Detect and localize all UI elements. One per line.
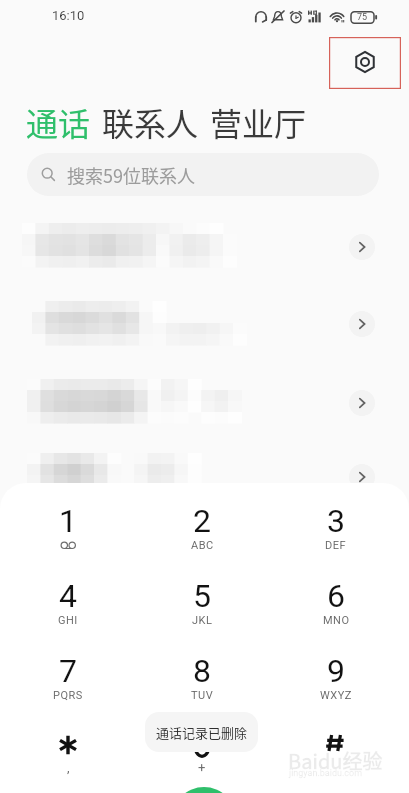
button[interactable]: 7 (23, 652, 113, 704)
button[interactable]: Call (172, 787, 236, 793)
staticText: TUV (191, 689, 214, 702)
button[interactable]: 3 (291, 502, 381, 554)
staticText: + (198, 760, 206, 775)
button[interactable]: 营业厅 (210, 99, 307, 145)
staticText: 16:10 (52, 8, 85, 23)
staticText: ABC (191, 539, 214, 552)
button[interactable]: Details (349, 311, 375, 337)
button[interactable]: 通话 (26, 99, 91, 145)
staticText: MNO (323, 614, 350, 627)
staticText: 3 (327, 502, 345, 540)
staticText: jingyan.baidu.com (289, 768, 363, 779)
staticText: 75 (357, 12, 368, 23)
staticText: 6 (327, 577, 345, 615)
button[interactable]: 9 (291, 652, 381, 704)
staticText: GHI (58, 614, 78, 627)
staticText: 7 (59, 652, 77, 690)
button[interactable]: Details (349, 390, 375, 416)
staticText: 通话 (26, 99, 91, 145)
button[interactable]: 5 (157, 577, 247, 629)
button[interactable]: 6 (291, 577, 381, 629)
button[interactable]: 搜索59位联系人 (27, 153, 379, 196)
button[interactable]: + (157, 719, 247, 771)
staticText: 8 (193, 652, 211, 690)
staticText: JKL (192, 614, 213, 627)
staticText: , (67, 760, 70, 775)
staticText: PQRS (53, 689, 83, 702)
staticText: 2 (193, 502, 211, 540)
button[interactable]: 联系人 (102, 99, 199, 145)
staticText: Baidu经验 (288, 746, 383, 775)
button[interactable]: Settings (329, 37, 401, 89)
staticText: 联系人 (102, 99, 199, 145)
button[interactable]: , (23, 719, 113, 771)
button[interactable]: 1 (23, 502, 113, 554)
staticText: 1 (59, 502, 77, 540)
button[interactable]: 8 (157, 652, 247, 704)
staticText: 4 (59, 577, 77, 615)
button[interactable]: 2 (157, 502, 247, 554)
button[interactable]: 4 (23, 577, 113, 629)
staticText: 通话记录已删除 (156, 723, 248, 742)
staticText: DEF (325, 539, 347, 552)
staticText: 5 (193, 577, 211, 615)
staticText: 9 (327, 652, 345, 690)
staticText: 营业厅 (210, 99, 307, 145)
button[interactable]: Details (349, 234, 375, 260)
staticText: WXYZ (320, 689, 352, 702)
button[interactable] (291, 717, 381, 769)
staticText: 搜索59位联系人 (67, 162, 195, 188)
button[interactable]: Details (349, 464, 375, 490)
